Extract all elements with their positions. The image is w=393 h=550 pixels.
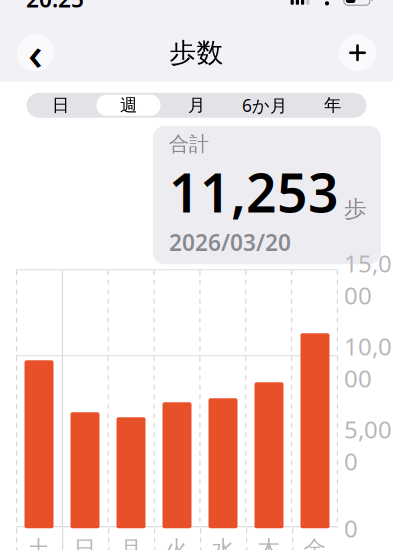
staticText: 15,000 xyxy=(344,247,392,311)
staticText: 月 xyxy=(119,535,142,550)
staticText: 金 xyxy=(303,535,326,550)
staticText: 週 xyxy=(120,95,137,116)
staticText: 20:25 xyxy=(26,0,84,14)
staticText: 水 xyxy=(211,535,234,550)
staticText: ‹ xyxy=(28,23,43,83)
staticText: 6か月 xyxy=(242,94,287,117)
button[interactable]: 年 xyxy=(298,93,366,118)
staticText: 日 xyxy=(73,535,96,550)
staticText: 木 xyxy=(257,535,280,550)
button[interactable]: 戻る xyxy=(17,34,54,71)
button[interactable]: 週 xyxy=(94,93,162,118)
staticText: 0 xyxy=(344,512,358,544)
staticText: 合計 xyxy=(169,132,209,156)
button[interactable]: 日 xyxy=(26,93,94,118)
button[interactable]: 6か月 xyxy=(230,93,298,118)
staticText: 月 xyxy=(188,95,205,116)
staticText: 火 xyxy=(165,535,188,550)
button[interactable]: 月 xyxy=(162,93,230,118)
staticText: 歩 xyxy=(344,195,367,223)
staticText: 日 xyxy=(52,95,69,116)
staticText: 歩数 xyxy=(169,36,223,69)
staticText: 10,000 xyxy=(344,330,392,394)
staticText: 5,000 xyxy=(344,413,392,477)
button[interactable]: 追加 xyxy=(339,34,376,71)
staticText: 11,253 xyxy=(169,156,339,227)
staticText: 2026/03/20 xyxy=(169,227,291,257)
staticText: 年 xyxy=(324,95,341,116)
staticText: 土 xyxy=(27,535,50,550)
